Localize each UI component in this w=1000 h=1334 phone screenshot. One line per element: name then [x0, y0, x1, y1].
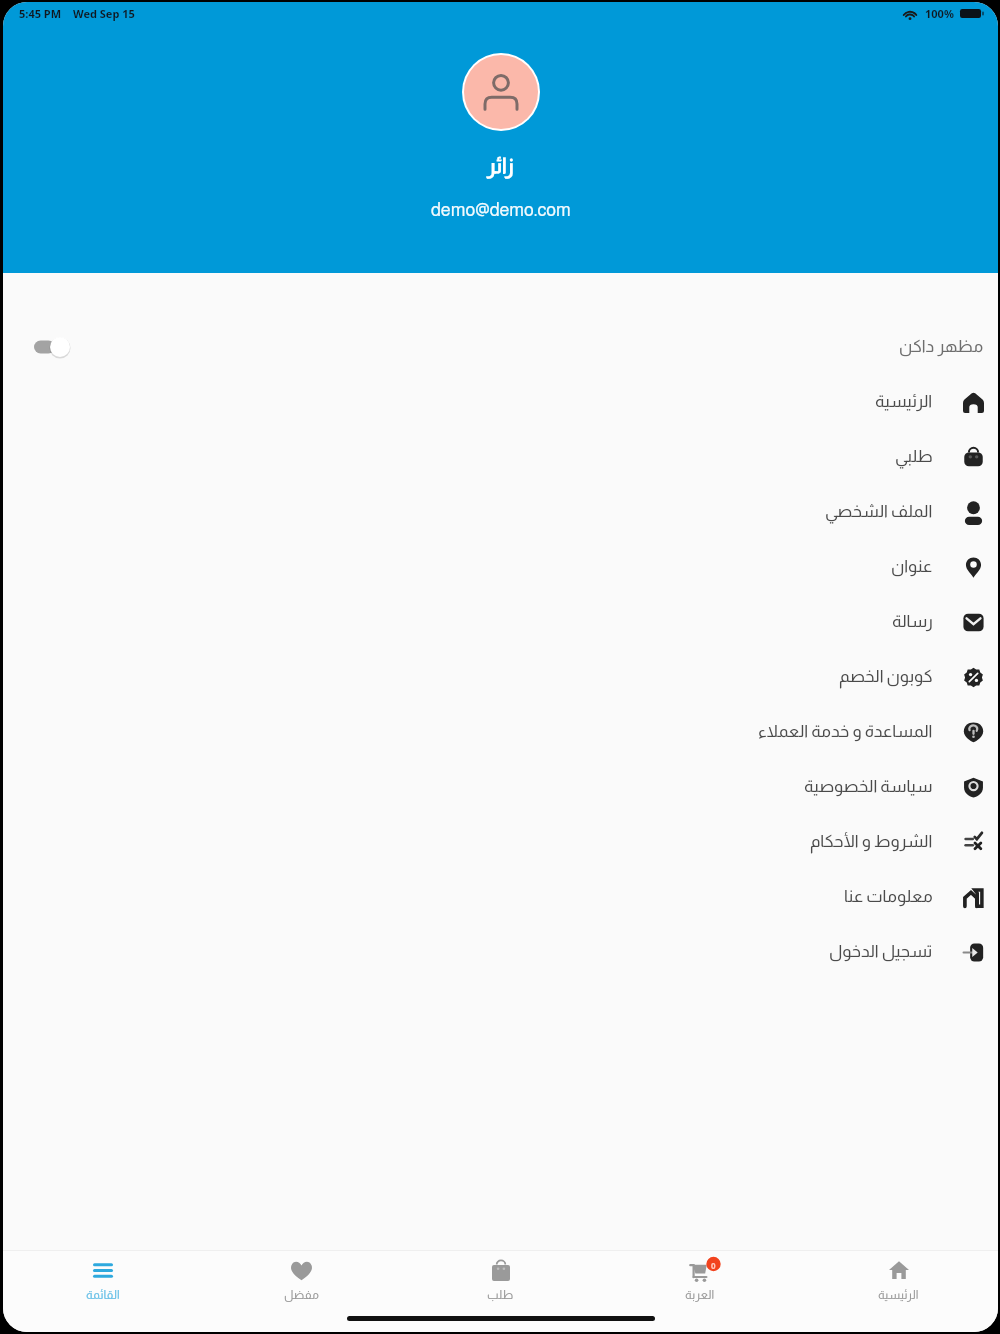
- staticText: 0: [711, 1260, 716, 1269]
- staticText: 100%: [925, 6, 954, 21]
- staticText: عنوان: [891, 557, 933, 576]
- button[interactable]: المساعدة و خدمة العملاء: [3, 704, 998, 759]
- staticText: طلبي: [895, 447, 933, 466]
- staticText: الملف الشخصي: [825, 502, 933, 521]
- button[interactable]: سياسة الخصوصية: [3, 759, 998, 814]
- staticText: تسجيل الدخول: [829, 942, 933, 961]
- button[interactable]: مظهر داكن: [3, 319, 998, 374]
- button[interactable]: القائمة: [3, 1259, 202, 1301]
- button[interactable]: رسالة: [3, 594, 998, 649]
- staticText: زائر: [487, 154, 514, 177]
- staticText: العربة: [685, 1288, 715, 1301]
- button[interactable]: كوبون الخصم: [3, 649, 998, 704]
- button[interactable]: تسجيل الدخول: [3, 924, 998, 979]
- staticText: معلومات عنا: [844, 887, 933, 906]
- staticText: الرئيسية: [875, 392, 933, 411]
- button[interactable]: الرئيسية: [799, 1259, 998, 1301]
- staticText: القائمة: [86, 1288, 120, 1301]
- button[interactable]: الرئيسية: [3, 374, 998, 429]
- button[interactable]: معلومات عنا: [3, 869, 998, 924]
- staticText: الرئيسية: [878, 1288, 919, 1301]
- staticText: الشروط و الأحكام: [810, 832, 933, 851]
- staticText: سياسة الخصوصية: [804, 777, 933, 796]
- staticText: كوبون الخصم: [839, 667, 933, 686]
- button[interactable]: عنوان: [3, 539, 998, 594]
- button[interactable]: الشروط و الأحكام: [3, 814, 998, 869]
- button[interactable]: طلب: [401, 1259, 600, 1301]
- staticText: 5:45 PM: [19, 6, 62, 21]
- button[interactable]: 0: [600, 1259, 799, 1301]
- staticText: مظهر داكن: [899, 337, 984, 356]
- staticText: Wed Sep 15: [73, 6, 135, 21]
- button[interactable]: طلبي: [3, 429, 998, 484]
- staticText: طلب: [487, 1288, 514, 1301]
- staticText: رسالة: [892, 612, 933, 631]
- staticText: demo@demo.com: [431, 200, 571, 220]
- staticText: المساعدة و خدمة العملاء: [758, 722, 933, 741]
- button[interactable]: مفضل: [202, 1259, 401, 1301]
- button[interactable]: الملف الشخصي: [3, 484, 998, 539]
- staticText: مفضل: [284, 1288, 319, 1301]
